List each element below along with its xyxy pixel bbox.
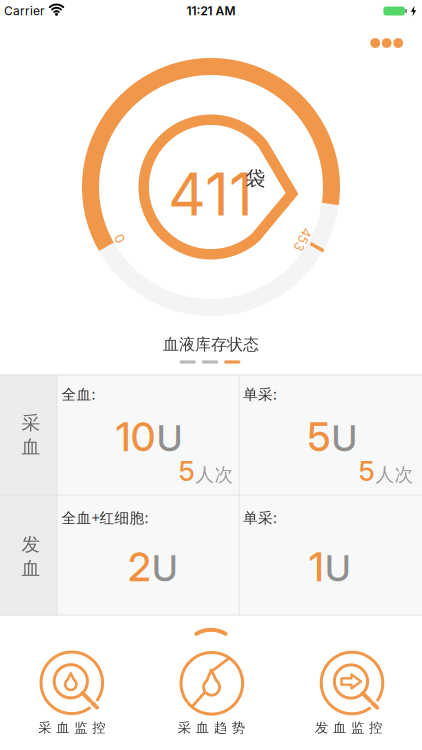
staticText: 单采: bbox=[243, 384, 277, 404]
staticText: 全血: bbox=[61, 384, 95, 404]
button[interactable]: 采血监控 bbox=[22, 645, 122, 745]
button[interactable]: 发血监控 bbox=[302, 645, 402, 745]
staticText: 采血趋势 bbox=[178, 719, 245, 736]
button[interactable]: Expand bbox=[181, 620, 241, 644]
staticText: U bbox=[152, 546, 178, 590]
button[interactable]: 采血趋势 bbox=[162, 645, 262, 745]
staticText: 5 bbox=[307, 413, 330, 461]
staticText: 2 bbox=[128, 543, 151, 591]
staticText: 血 bbox=[21, 435, 40, 458]
staticText: 血 bbox=[21, 557, 40, 580]
staticText: 5 bbox=[358, 454, 374, 488]
staticText: Carrier bbox=[4, 4, 45, 18]
staticText: U bbox=[325, 546, 351, 590]
staticText: 0 bbox=[115, 230, 123, 246]
staticText: 1 bbox=[309, 543, 324, 591]
staticText: 血液库存状态 bbox=[163, 335, 259, 354]
staticText: 11:21 AM bbox=[186, 4, 235, 18]
staticText: 411 bbox=[168, 159, 253, 230]
staticText: 人次 bbox=[195, 463, 233, 486]
staticText: 发血监控 bbox=[315, 719, 382, 736]
staticText: 5 bbox=[178, 454, 194, 488]
staticText: U bbox=[331, 416, 357, 460]
staticText: 10 bbox=[116, 413, 156, 461]
staticText: 人次 bbox=[375, 463, 413, 486]
staticText: U bbox=[157, 416, 183, 460]
staticText: 单采: bbox=[243, 508, 277, 527]
staticText: 采 bbox=[21, 412, 40, 434]
staticText: 453 bbox=[290, 232, 314, 247]
staticText: 全血+红细胞: bbox=[61, 508, 148, 527]
staticText: 采血监控 bbox=[38, 719, 105, 736]
button[interactable]: More bbox=[370, 38, 403, 48]
staticText: 袋 bbox=[245, 166, 265, 191]
staticText: 发 bbox=[21, 533, 40, 556]
